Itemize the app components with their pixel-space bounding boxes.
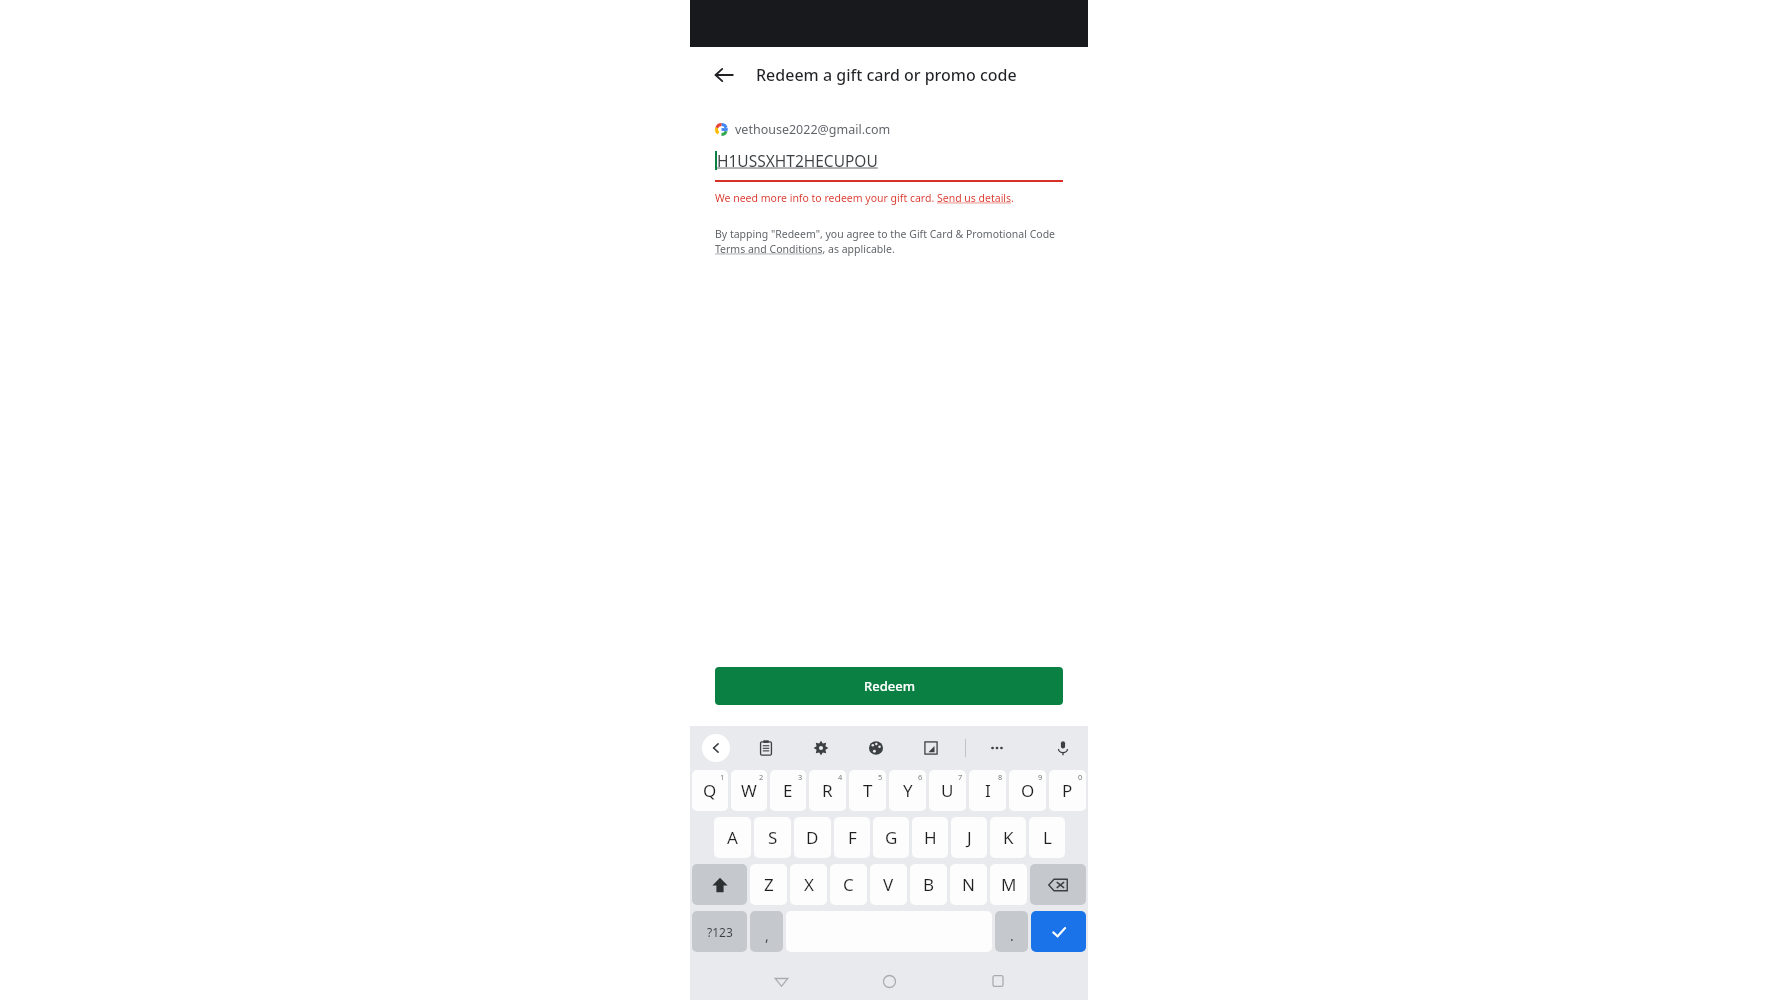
staticText: 3 xyxy=(798,772,803,782)
staticText: Q xyxy=(703,779,717,802)
staticText: F xyxy=(848,826,857,849)
button[interactable]: Redeem xyxy=(715,667,1063,705)
staticText: P xyxy=(1062,779,1073,802)
button[interactable]: More options xyxy=(984,735,1010,761)
staticText: G xyxy=(885,826,898,849)
button[interactable]: Q xyxy=(692,770,728,811)
staticText: C xyxy=(843,873,854,896)
staticText: 5 xyxy=(878,772,883,782)
staticText: B xyxy=(923,873,935,896)
button[interactable]: Backspace xyxy=(1030,864,1086,905)
button[interactable]: Settings xyxy=(808,735,834,761)
button[interactable]: D xyxy=(794,817,831,858)
button[interactable]: Voice input xyxy=(1050,735,1076,761)
staticText: Y xyxy=(903,779,913,802)
button[interactable]: I xyxy=(969,770,1006,811)
button[interactable]: L xyxy=(1029,817,1065,858)
button[interactable]: Back xyxy=(704,55,744,95)
staticText: J xyxy=(967,826,972,849)
staticText: A xyxy=(727,826,738,849)
button[interactable]: ?123 xyxy=(692,911,747,952)
staticText: M xyxy=(1001,873,1017,896)
button[interactable]: M xyxy=(990,864,1027,905)
button[interactable]: Clipboard xyxy=(753,735,779,761)
staticText: vethouse2022@gmail.com xyxy=(735,121,891,138)
staticText: ?123 xyxy=(707,924,733,940)
button[interactable]: Shift xyxy=(692,864,747,905)
button[interactable]: J xyxy=(951,817,987,858)
staticText: K xyxy=(1003,826,1014,849)
staticText: 9 xyxy=(1038,772,1043,782)
staticText: . xyxy=(1010,926,1014,945)
button[interactable]: Back xyxy=(763,963,799,999)
button[interactable]: G xyxy=(873,817,909,858)
staticText: H xyxy=(924,826,937,849)
staticText: Z xyxy=(764,873,774,896)
staticText: W xyxy=(741,779,757,802)
staticText: R xyxy=(822,779,833,802)
button[interactable]: N xyxy=(950,864,987,905)
button[interactable]: H xyxy=(912,817,948,858)
staticText: D xyxy=(806,826,819,849)
button[interactable]: Expand toolbar xyxy=(702,734,730,762)
staticText: N xyxy=(962,873,975,896)
staticText: Redeem xyxy=(864,677,915,695)
button[interactable]: W xyxy=(731,770,767,811)
button[interactable]: Recents xyxy=(980,963,1016,999)
staticText: By tapping "Redeem", you agree to the Gi… xyxy=(715,227,1063,256)
staticText: S xyxy=(768,826,778,849)
staticText: 7 xyxy=(958,772,963,782)
button[interactable]: O xyxy=(1009,770,1046,811)
button[interactable]: U xyxy=(929,770,966,811)
button[interactable]: B xyxy=(910,864,947,905)
button[interactable]: F xyxy=(834,817,870,858)
button[interactable]: V xyxy=(870,864,907,905)
staticText: We need more info to redeem your gift ca… xyxy=(715,191,1014,205)
staticText: I xyxy=(985,779,991,802)
button[interactable]: A xyxy=(714,817,751,858)
button[interactable]: S xyxy=(754,817,791,858)
button[interactable]: X xyxy=(790,864,827,905)
button[interactable]: K xyxy=(990,817,1026,858)
button[interactable]: Y xyxy=(889,770,926,811)
button[interactable]: Z xyxy=(750,864,787,905)
button[interactable]: . xyxy=(995,911,1028,952)
staticText: 0 xyxy=(1078,772,1083,782)
button[interactable]: Themes xyxy=(863,735,889,761)
button[interactable]: T xyxy=(849,770,886,811)
staticText: T xyxy=(863,779,873,802)
staticText: 4 xyxy=(838,772,843,782)
staticText: E xyxy=(783,779,793,802)
button[interactable]: R xyxy=(809,770,846,811)
button[interactable]: E xyxy=(770,770,806,811)
staticText: 2 xyxy=(759,772,764,782)
staticText: , xyxy=(765,926,769,945)
button[interactable]: P xyxy=(1049,770,1086,811)
staticText: 1 xyxy=(720,772,725,782)
staticText: O xyxy=(1021,779,1035,802)
button[interactable]: Resize keyboard xyxy=(918,735,944,761)
staticText: U xyxy=(941,779,954,802)
staticText: 6 xyxy=(918,772,923,782)
staticText: X xyxy=(804,873,814,896)
button[interactable]: , xyxy=(750,911,783,952)
staticText: L xyxy=(1043,826,1052,849)
staticText: V xyxy=(883,873,894,896)
button[interactable]: C xyxy=(830,864,867,905)
button[interactable]: Enter xyxy=(1031,911,1086,952)
staticText: H1USSXHT2HECUPOU xyxy=(717,150,878,171)
button[interactable]: Home xyxy=(871,963,907,999)
staticText: Redeem a gift card or promo code xyxy=(756,64,1017,86)
staticText: 8 xyxy=(998,772,1003,782)
